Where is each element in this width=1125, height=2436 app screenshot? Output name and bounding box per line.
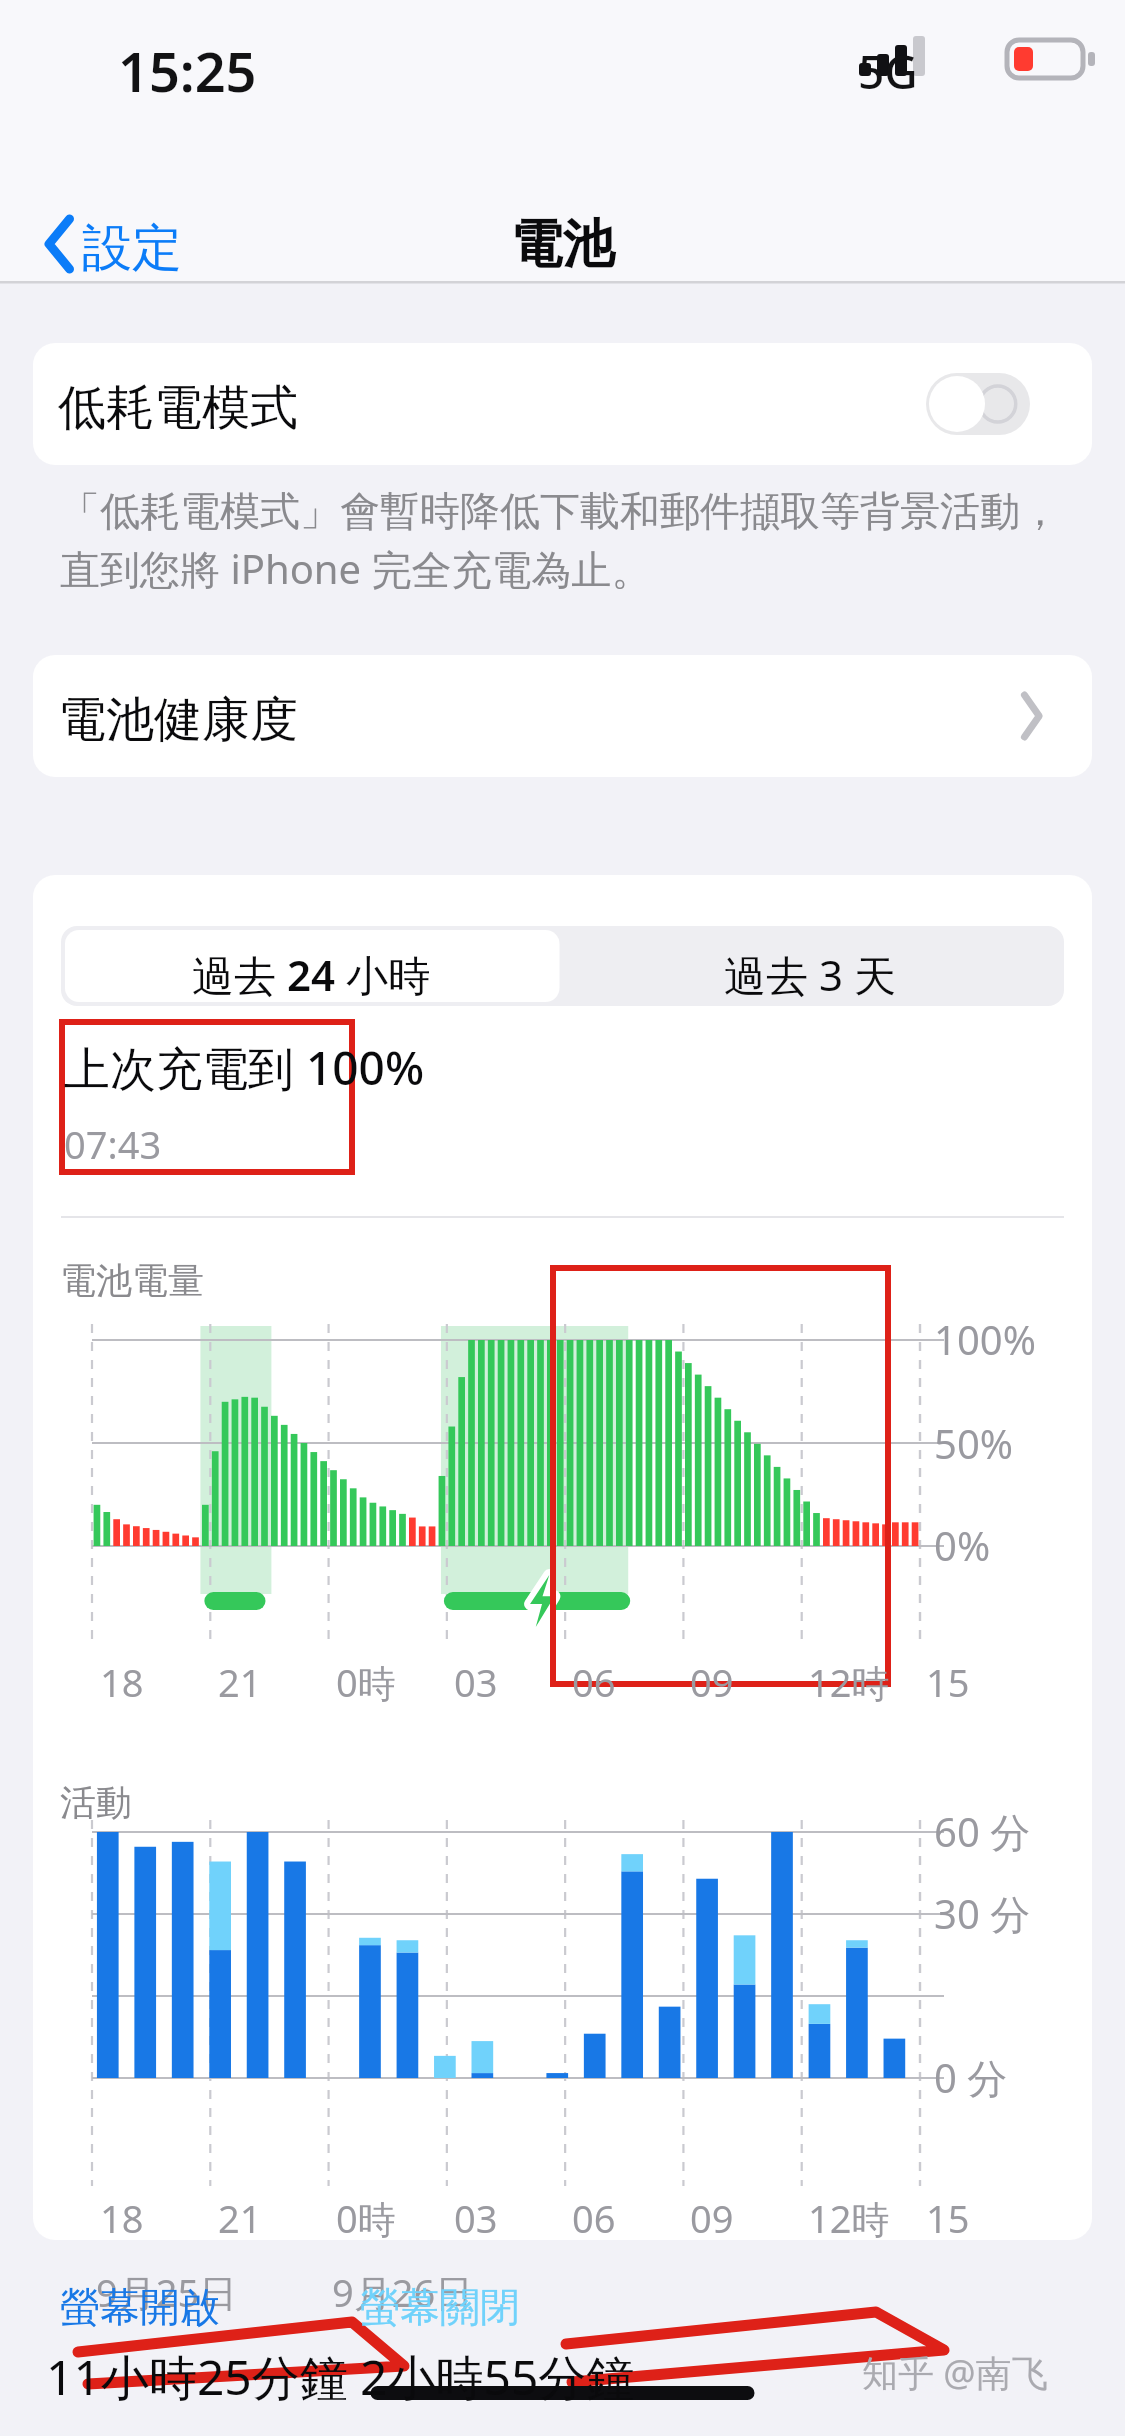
staticText: 9月26日 (332, 2266, 474, 2318)
staticText: 0時 (336, 1656, 396, 1708)
staticText: 電池電量 (60, 1258, 204, 1303)
button[interactable]: 電池健康度 (33, 655, 1092, 777)
staticText: 螢幕開啟 (60, 2282, 220, 2332)
staticText: 電池健康度 (58, 690, 298, 750)
staticText: 知乎 @南飞 (862, 2348, 1048, 2397)
staticText: 15:25 (118, 34, 257, 108)
staticText: 低耗電模式 (58, 378, 298, 438)
staticText: 0 分 (934, 2050, 1008, 2105)
staticText: 12時 (808, 1656, 890, 1708)
staticText: 活動 (60, 1780, 132, 1825)
button[interactable]: 設定 (24, 206, 254, 290)
staticText: 過去 24 小時 (65, 946, 557, 1003)
staticText: 0% (934, 1518, 991, 1572)
staticText: 5G (858, 40, 918, 103)
staticText: 100% (934, 1312, 1036, 1366)
staticText: 過去 3 天 (562, 946, 1058, 1003)
staticText: 18 (100, 2192, 144, 2244)
staticText: 30 分 (934, 1886, 1031, 1941)
staticText: 18 (100, 1656, 144, 1708)
button[interactable] (65, 928, 557, 1004)
button[interactable] (33, 343, 1092, 465)
staticText: 9月25日 (96, 2266, 238, 2318)
staticText: 03 (454, 2192, 498, 2244)
staticText: 11小時25分鐘 (46, 2344, 348, 2410)
staticText: 50% (934, 1416, 1013, 1470)
staticText: 09 (690, 1656, 734, 1708)
staticText: 15 (926, 2192, 970, 2244)
staticText: 06 (572, 1656, 616, 1708)
staticText: 上次充電到 100% (64, 1036, 425, 1099)
staticText: 2小時55分鐘 (360, 2344, 635, 2410)
staticText: 螢幕關閉 (360, 2282, 520, 2332)
staticText: 03 (454, 1656, 498, 1708)
button[interactable] (562, 928, 1058, 1004)
staticText: 09 (690, 2192, 734, 2244)
staticText: 電池 (0, 212, 1125, 278)
staticText: 12時 (808, 2192, 890, 2244)
staticText: 06 (572, 2192, 616, 2244)
staticText: 07:43 (64, 1118, 162, 1170)
staticText: 15 (926, 1656, 970, 1708)
staticText: 21 (218, 2192, 262, 2244)
staticText: 設定 (82, 217, 182, 280)
staticText: 「低耗電模式」會暫時降低下載和郵件擷取等背景活動，直到您將 iPhone 完全充… (60, 486, 1070, 595)
staticText: 21 (218, 1656, 262, 1708)
staticText: 60 分 (934, 1804, 1031, 1859)
staticText: 0時 (336, 2192, 396, 2244)
